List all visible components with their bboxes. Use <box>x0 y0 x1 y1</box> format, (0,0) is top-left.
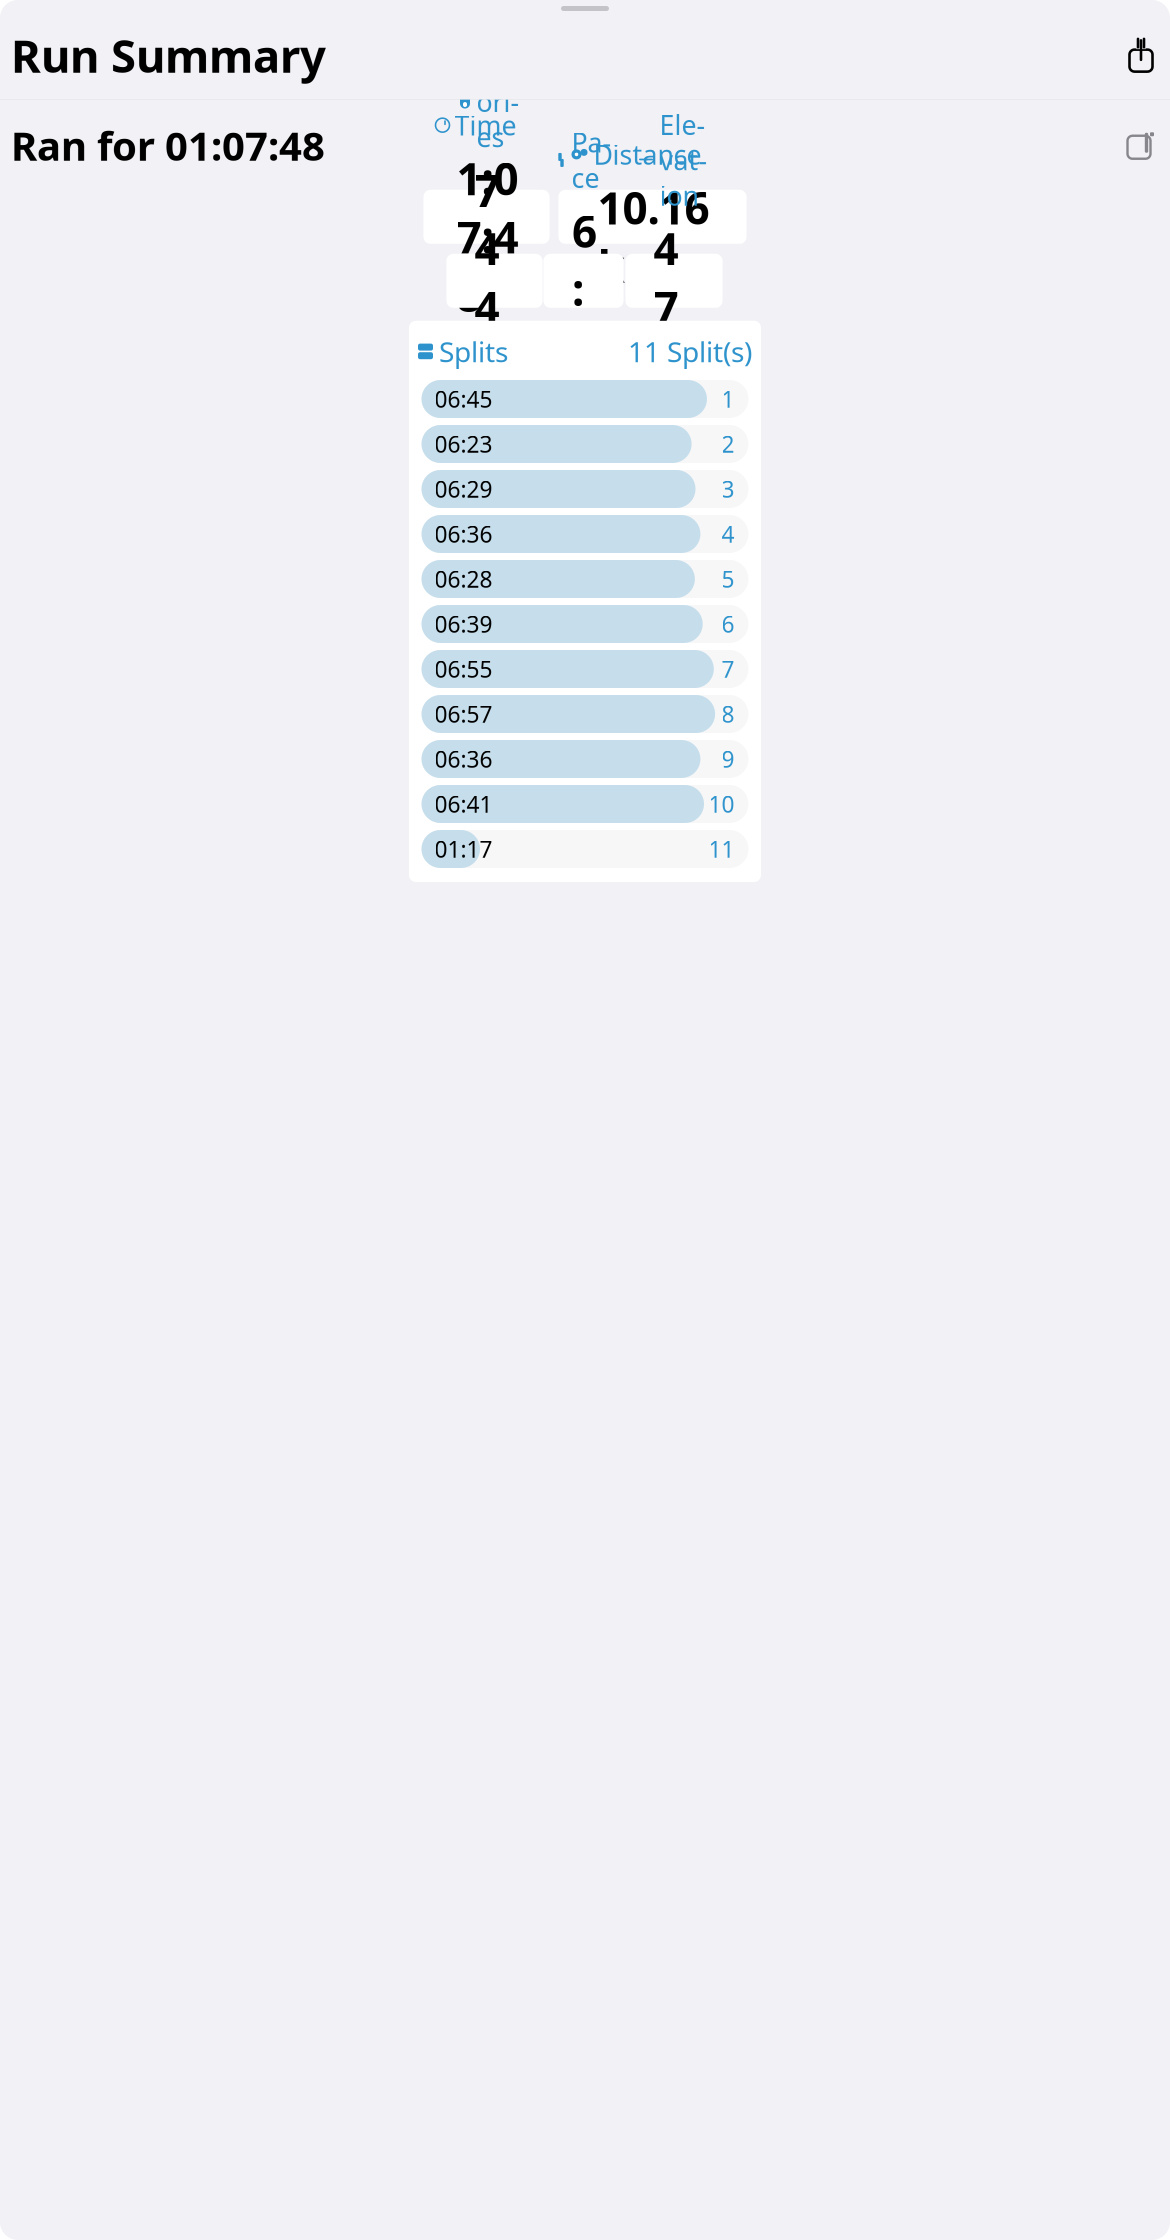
staticText: 2 <box>721 429 734 459</box>
staticText: 06:57 <box>434 699 492 729</box>
staticText: 744 kCal <box>474 161 516 511</box>
staticText: 9 <box>721 744 734 774</box>
staticText: 06:41 <box>434 789 492 819</box>
staticText: 1 <box>721 384 734 414</box>
staticText: 1:07:48 <box>456 149 518 324</box>
staticText: 8 <box>721 699 734 729</box>
staticText: 6 <box>721 609 734 639</box>
staticText: 11 Split(s) <box>628 333 752 370</box>
staticText: 06:39 <box>434 609 492 639</box>
staticText: Distance <box>593 137 701 172</box>
staticText: 06:45 <box>434 384 492 414</box>
staticText: Splits <box>439 333 508 370</box>
staticText: 10 <box>708 789 734 819</box>
staticText: 4 <box>721 519 734 549</box>
staticText: 7 <box>721 654 734 684</box>
staticText: Calories <box>476 48 524 155</box>
staticText: 06:36 <box>434 519 492 549</box>
staticText: 6:40 <box>572 201 597 435</box>
staticText: 06:28 <box>434 564 492 594</box>
staticText: 06:55 <box>434 654 492 684</box>
button[interactable]: Edit <box>1116 126 1158 164</box>
staticText: Pace <box>571 124 611 195</box>
staticText: Ran for 01:07:48 <box>11 119 325 172</box>
staticText: 06:36 <box>434 744 492 774</box>
button[interactable]: Share <box>1116 34 1158 76</box>
staticText: 3 <box>721 474 734 504</box>
staticText: 473 m <box>653 219 696 453</box>
staticText: 06:29 <box>434 474 492 504</box>
staticText: Elevation <box>659 107 707 213</box>
staticText: 06:23 <box>434 429 492 459</box>
staticText: Time <box>454 107 516 143</box>
staticText: 10.16 km <box>597 178 709 295</box>
staticText: 11 <box>708 834 734 864</box>
staticText: 5 <box>721 564 734 594</box>
staticText: Run Summary <box>11 25 326 85</box>
staticText: 01:17 <box>434 834 492 864</box>
